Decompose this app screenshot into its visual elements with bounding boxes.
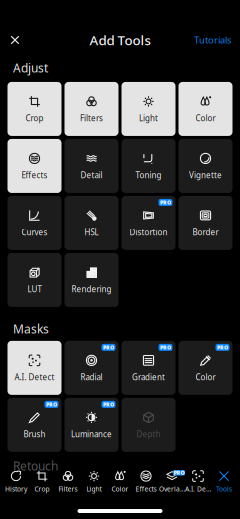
staticText: Luminance (71, 429, 112, 439)
button[interactable]: History (3, 470, 29, 494)
staticText: Toning (135, 170, 161, 180)
button[interactable]: Gradient (121, 341, 175, 395)
staticText: A.I. Detect (14, 372, 54, 382)
staticText: PRO (160, 199, 171, 206)
button[interactable]: Effects (7, 139, 61, 193)
staticText: Depth (136, 429, 160, 439)
staticText: Detail (80, 170, 102, 180)
staticText: Masks (13, 321, 49, 337)
staticText: PRO (160, 344, 171, 351)
button[interactable]: Toning (121, 139, 175, 193)
button[interactable]: Brush (7, 398, 61, 452)
staticText: Gradient (132, 372, 165, 382)
staticText: Effects (135, 485, 156, 493)
button[interactable]: Tutorials (194, 30, 240, 50)
staticText: Vignette (189, 170, 222, 180)
button[interactable]: LUT (7, 253, 61, 307)
button[interactable]: Crop (7, 82, 61, 136)
button[interactable]: Filters (64, 82, 118, 136)
staticText: Color (111, 485, 128, 493)
button[interactable]: Tools (211, 470, 237, 494)
button[interactable]: Color (178, 82, 232, 136)
staticText: HSL (84, 227, 98, 237)
staticText: Color (195, 372, 215, 382)
button[interactable]: Radial (64, 341, 118, 395)
button[interactable]: Curves (7, 196, 61, 250)
button[interactable]: Distortion (121, 196, 175, 250)
button[interactable]: Crop (29, 470, 55, 494)
staticText: Radial (80, 372, 102, 382)
staticText: Add Tools (89, 31, 150, 49)
staticText: Tutorials (194, 34, 231, 46)
staticText: Filters (80, 113, 103, 123)
button[interactable]: Color (178, 341, 232, 395)
staticText: A.I. Detect (185, 485, 211, 493)
staticText: PRO (46, 401, 57, 408)
button[interactable]: Light (81, 470, 107, 494)
staticText: Light (139, 113, 158, 123)
staticText: PRO (217, 344, 228, 351)
staticText: History (5, 485, 27, 493)
staticText: Effects (21, 170, 47, 180)
staticText: Adjust (13, 60, 48, 76)
button[interactable]: Vignette (178, 139, 232, 193)
button[interactable]: Rendering (64, 253, 118, 307)
staticText: Tools (216, 485, 232, 493)
button[interactable]: Close (4, 30, 26, 50)
staticText: Distortion (129, 227, 167, 237)
staticText: PRO (173, 469, 184, 476)
staticText: Light (86, 485, 101, 493)
staticText: Crop (34, 485, 49, 493)
staticText: Curves (21, 227, 47, 237)
staticText: Crop (25, 113, 43, 123)
staticText: Border (192, 227, 218, 237)
button[interactable]: Effects (133, 470, 159, 494)
button[interactable]: A.I. Detect (7, 341, 61, 395)
staticText: Overlays (159, 485, 185, 493)
staticText: LUT (27, 284, 41, 294)
button[interactable]: A.I. Detect (185, 470, 211, 494)
button[interactable]: Filters (55, 470, 81, 494)
staticText: PRO (103, 401, 114, 408)
staticText: PRO (103, 344, 114, 351)
button[interactable]: HSL (64, 196, 118, 250)
staticText: Filters (58, 485, 77, 493)
button[interactable]: Color (107, 470, 133, 494)
staticText: Color (195, 113, 215, 123)
button[interactable]: Detail (64, 139, 118, 193)
button[interactable]: Depth (121, 398, 175, 452)
button[interactable]: Overlays (159, 470, 185, 494)
staticText: Rendering (71, 284, 111, 294)
button[interactable]: Light (121, 82, 175, 136)
button[interactable]: Border (178, 196, 232, 250)
button[interactable]: Luminance (64, 398, 118, 452)
staticText: Brush (23, 429, 45, 439)
staticText: Retouch (13, 458, 58, 474)
